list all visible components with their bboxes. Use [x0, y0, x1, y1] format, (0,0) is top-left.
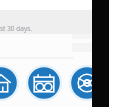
button[interactable]: Settings — [68, 64, 106, 102]
button[interactable]: Home — [0, 64, 20, 102]
button[interactable]: Appliances — [25, 64, 63, 102]
staticText: st 30 days. — [0, 24, 33, 33]
